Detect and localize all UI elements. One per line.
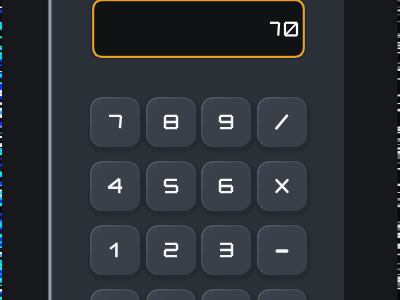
button[interactable]: Add xyxy=(257,289,307,300)
button[interactable]: Decimal point xyxy=(146,289,196,300)
button[interactable]: 3 xyxy=(201,225,251,275)
button[interactable]: 2 xyxy=(146,225,196,275)
button[interactable]: Equals xyxy=(201,289,251,300)
button[interactable]: 6 xyxy=(201,161,251,211)
button[interactable]: 4 xyxy=(90,161,140,211)
button[interactable]: 7 xyxy=(90,97,140,147)
button[interactable]: 8 xyxy=(146,97,196,147)
button[interactable]: 5 xyxy=(146,161,196,211)
button[interactable]: 9 xyxy=(201,97,251,147)
button[interactable]: 1 xyxy=(90,225,140,275)
button[interactable]: Multiply xyxy=(257,161,307,211)
button[interactable]: Divide xyxy=(257,97,307,147)
button[interactable]: 0 xyxy=(90,289,140,300)
button[interactable]: Subtract xyxy=(257,225,307,275)
button[interactable]: Display shows 70 xyxy=(91,0,306,59)
